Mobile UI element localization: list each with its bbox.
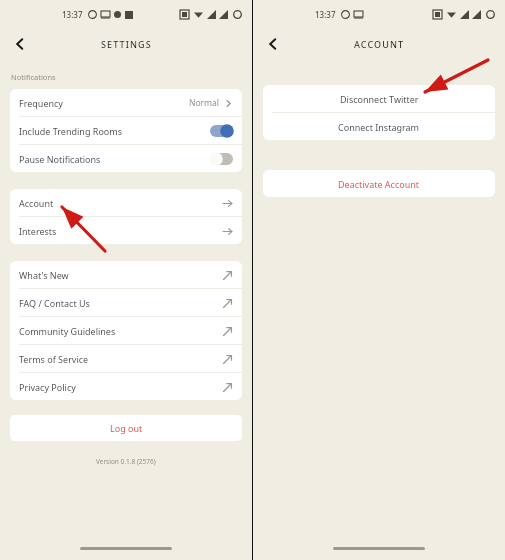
staticText: Notifications [11, 72, 56, 82]
staticText: Community Guidelines [19, 325, 116, 337]
staticText: Privacy Policy [19, 381, 76, 393]
staticText: Version 0.1.8 (2576) [96, 457, 156, 466]
staticText: ACCOUNT [354, 38, 405, 50]
button[interactable]: Include Trending Rooms [10, 117, 242, 144]
button[interactable]: Connect Instagram [263, 113, 495, 140]
button[interactable] [210, 125, 233, 137]
staticText: Disconnect Twitter [340, 93, 419, 105]
button[interactable]: Back [6, 30, 34, 58]
button[interactable]: Deactivate Account [263, 170, 495, 197]
button[interactable] [210, 153, 233, 165]
button[interactable]: What's New [10, 261, 242, 288]
staticText: Account [19, 197, 54, 209]
button[interactable]: Frequency [10, 89, 242, 116]
button[interactable]: Account [10, 189, 242, 216]
staticText: Frequency [19, 97, 63, 109]
button[interactable]: FAQ / Contact Us [10, 289, 242, 316]
staticText: 13:37 [315, 9, 336, 20]
staticText: Pause Notifications [19, 153, 101, 165]
button[interactable]: Privacy Policy [10, 373, 242, 400]
staticText: Connect Instagram [338, 121, 420, 133]
button[interactable]: Log out [10, 415, 242, 441]
staticText: Interests [19, 225, 57, 237]
button[interactable]: Pause Notifications [10, 145, 242, 172]
staticText: SETTINGS [101, 38, 152, 50]
button[interactable]: Interests [10, 217, 242, 244]
staticText: Deactivate Account [338, 178, 420, 190]
button[interactable]: Back [259, 30, 287, 58]
staticText: Normal [189, 97, 220, 109]
staticText: FAQ / Contact Us [19, 297, 90, 309]
staticText: Log out [110, 422, 143, 434]
button[interactable]: Terms of Service [10, 345, 242, 372]
staticText: 13:37 [62, 9, 83, 20]
staticText: Include Trending Rooms [19, 125, 123, 137]
button[interactable]: Community Guidelines [10, 317, 242, 344]
staticText: What's New [19, 269, 69, 281]
staticText: Terms of Service [19, 353, 89, 365]
button[interactable]: Disconnect Twitter [263, 85, 495, 112]
